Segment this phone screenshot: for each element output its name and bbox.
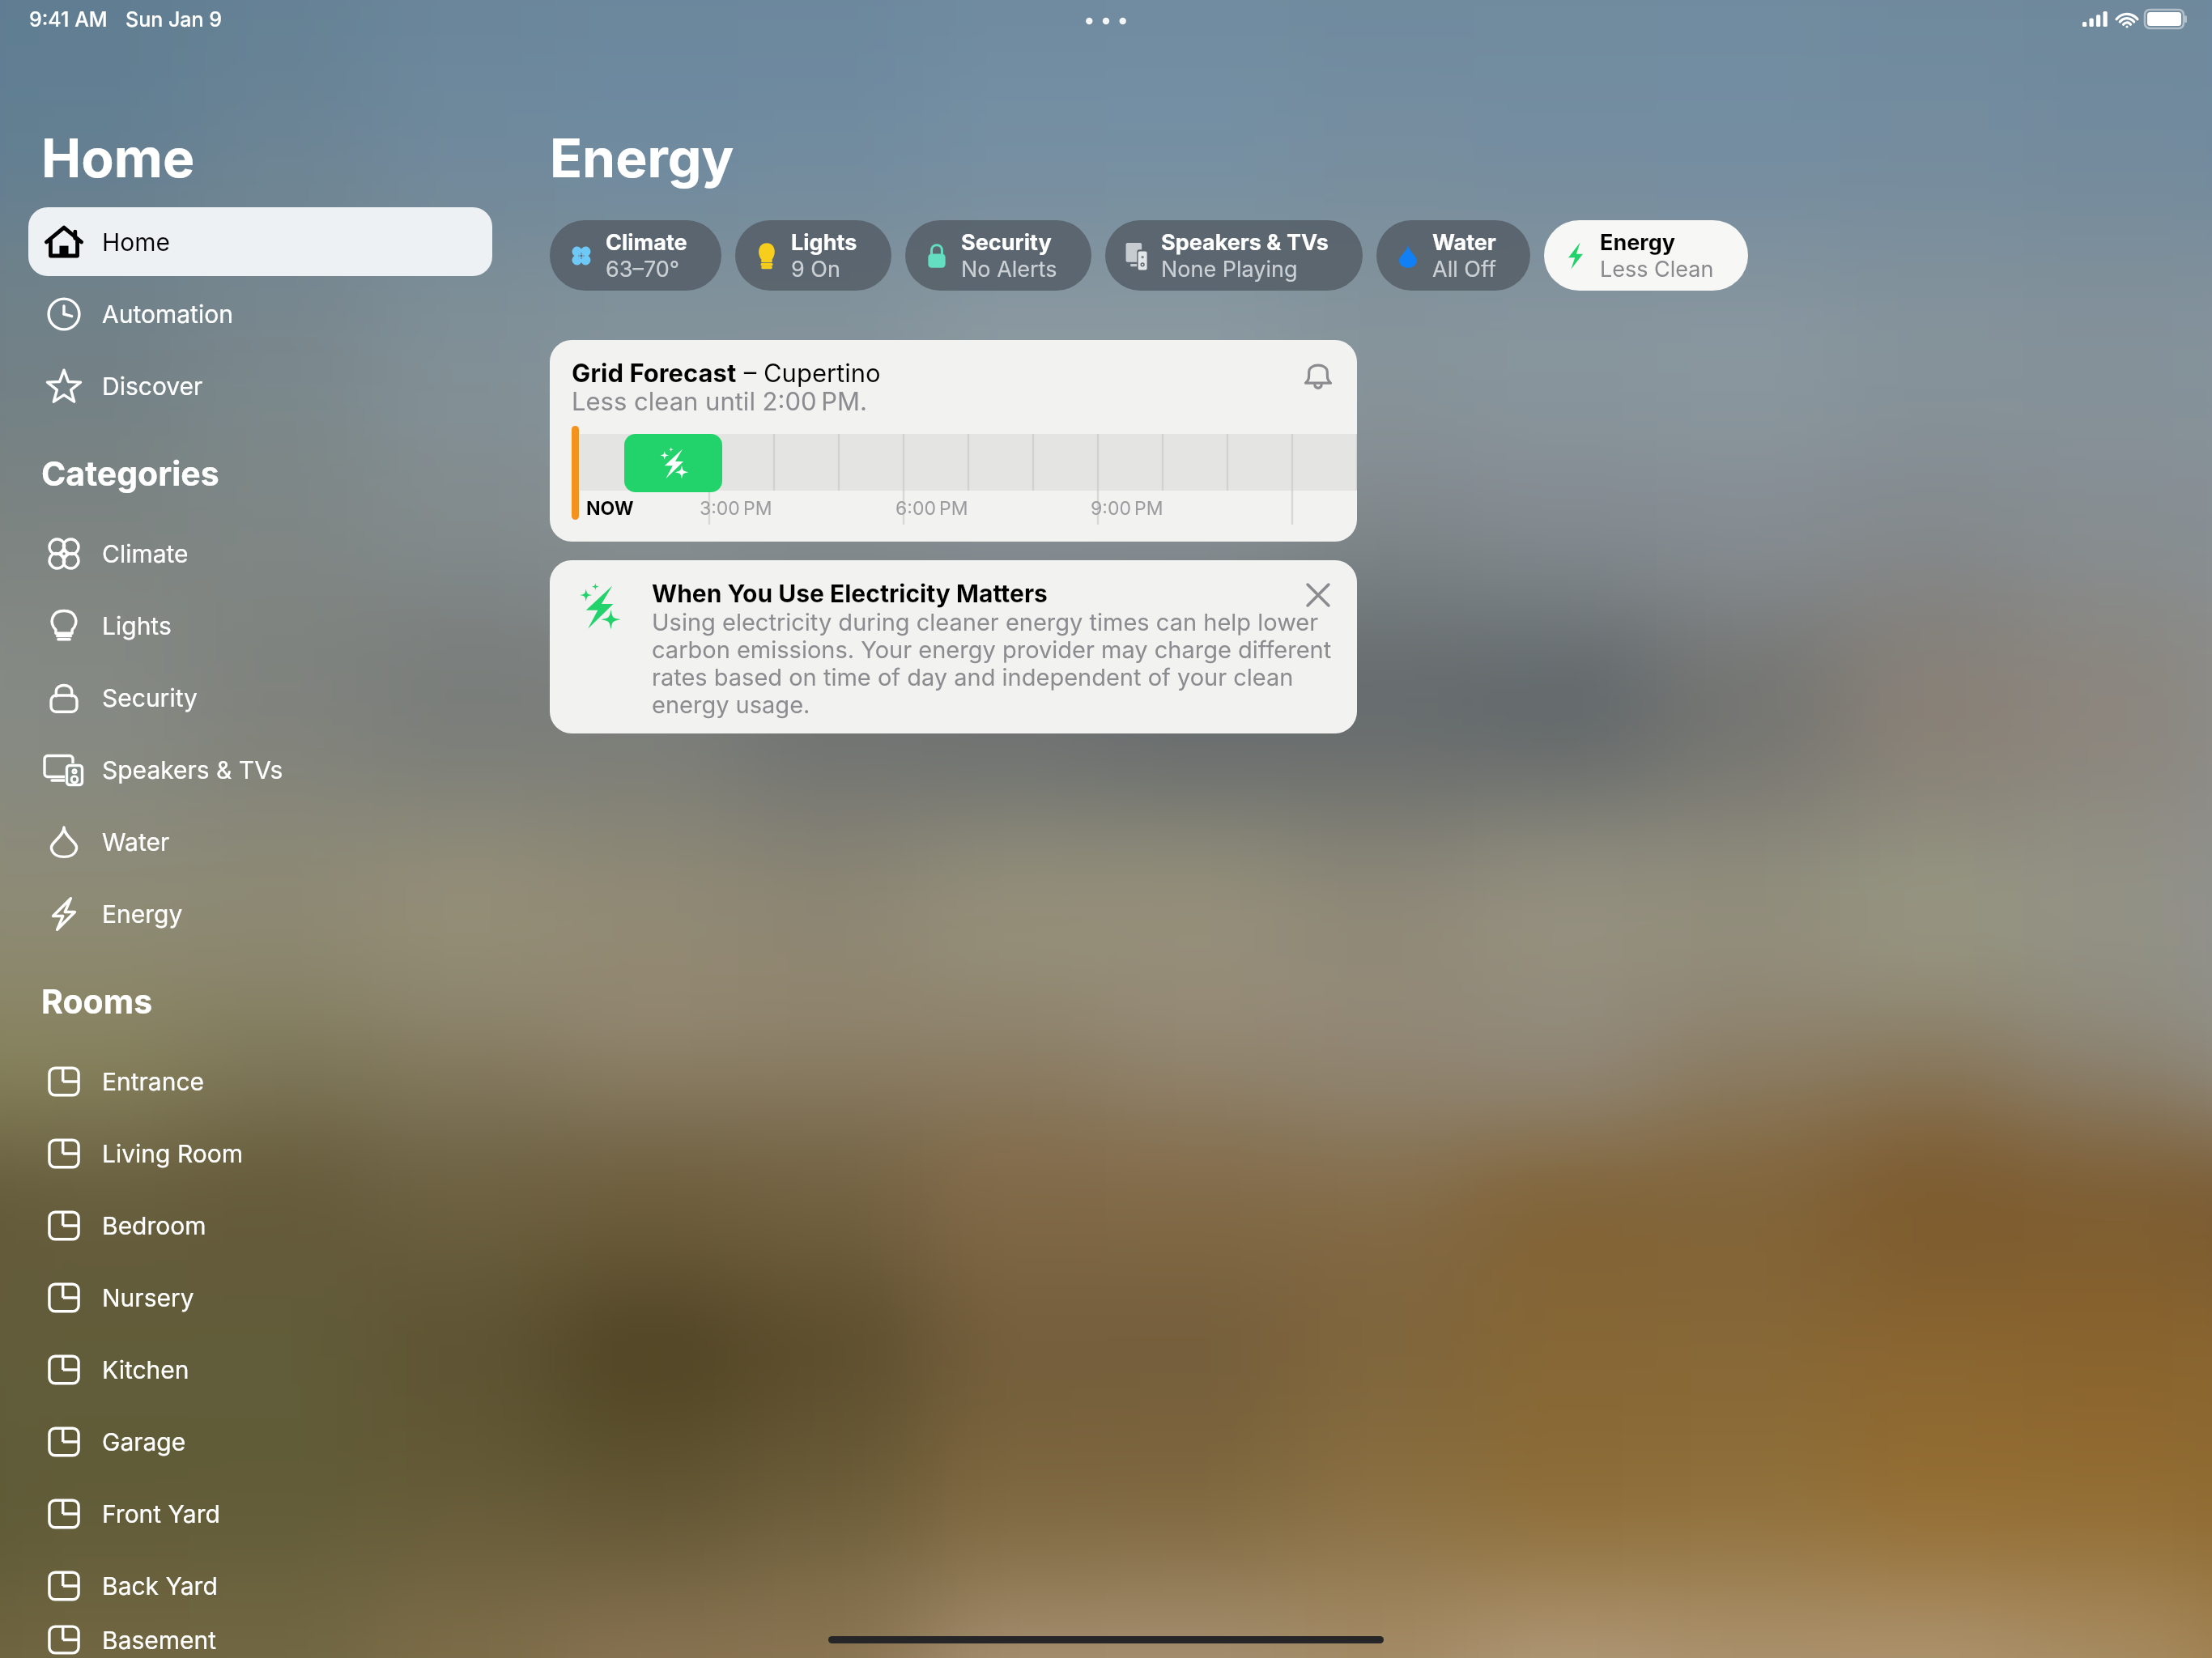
staticText: Security [961, 229, 1052, 256]
button[interactable]: Basement [28, 1623, 492, 1656]
staticText: Less Clean [1600, 256, 1714, 283]
staticText: Speakers & TVs [1161, 229, 1329, 256]
staticText: Bedroom [102, 1211, 206, 1240]
button[interactable]: Speakers & TVs [28, 735, 492, 804]
staticText: – Cupertino [737, 358, 881, 389]
staticText: All Off [1432, 256, 1496, 283]
button[interactable]: Bedroom [28, 1191, 492, 1260]
button[interactable]: When You Use Electricity Matters [550, 560, 1357, 733]
staticText: Living Room [102, 1139, 244, 1168]
staticText: Categories [41, 453, 219, 494]
staticText: Discover [102, 372, 203, 401]
staticText: None Playing [1161, 256, 1298, 283]
button[interactable]: Energy [28, 879, 492, 948]
button[interactable]: Living Room [28, 1119, 492, 1188]
button[interactable]: Kitchen [28, 1335, 492, 1404]
button[interactable]: Security [28, 663, 492, 732]
staticText: 6:00 PM [895, 497, 968, 520]
staticText: 9 On [791, 256, 840, 283]
staticText: Lights [102, 611, 172, 640]
button[interactable]: Garage [28, 1407, 492, 1476]
staticText: 9:41 AM [29, 7, 108, 32]
staticText: No Alerts [961, 256, 1057, 283]
button[interactable]: Front Yard [28, 1479, 492, 1548]
staticText: Home [102, 227, 171, 257]
staticText: Water [102, 827, 170, 857]
staticText: NOW [586, 497, 634, 520]
staticText: Basement [102, 1626, 217, 1655]
button[interactable]: Automation [28, 279, 492, 348]
staticText: 3:00 PM [700, 497, 772, 520]
staticText: Sun Jan 9 [125, 7, 222, 32]
staticText: Energy [1600, 229, 1675, 256]
staticText: Energy [550, 125, 734, 190]
button[interactable]: Home [28, 207, 492, 276]
button[interactable]: Back Yard [28, 1551, 492, 1620]
button[interactable]: Nursery [28, 1263, 492, 1332]
staticText: Climate [606, 229, 687, 256]
staticText: Lights [791, 229, 857, 256]
staticText: Security [102, 683, 198, 712]
staticText: Climate [102, 539, 189, 568]
staticText: Automation [102, 300, 233, 329]
staticText: Garage [102, 1427, 186, 1456]
button[interactable]: Entrance [28, 1047, 492, 1116]
button[interactable]: Lights [735, 220, 891, 291]
button[interactable]: Energy [1544, 220, 1748, 291]
button[interactable]: Lights [28, 591, 492, 660]
staticText: Grid Forecast [572, 358, 737, 389]
staticText: Front Yard [102, 1499, 220, 1528]
staticText: Rooms [41, 981, 153, 1022]
staticText: Water [1432, 229, 1496, 256]
staticText: Home [41, 125, 195, 190]
staticText: Entrance [102, 1067, 205, 1096]
staticText: Less clean until 2:00 PM. [572, 386, 867, 417]
button[interactable]: Climate [550, 220, 721, 291]
button[interactable]: Discover [28, 351, 492, 420]
staticText: 63–70° [606, 256, 680, 283]
staticText: When You Use Electricity Matters [652, 579, 1048, 608]
button[interactable]: Water [28, 807, 492, 876]
staticText: Energy [102, 899, 183, 929]
button[interactable]: Grid Forecast [550, 340, 1357, 542]
button[interactable]: Notifications [1295, 351, 1342, 398]
staticText: Back Yard [102, 1571, 218, 1601]
button[interactable]: Security [905, 220, 1091, 291]
button[interactable]: Dismiss [1295, 572, 1342, 619]
staticText: Using electricity during cleaner energy … [652, 608, 1340, 719]
staticText: 9:00 PM [1091, 497, 1163, 520]
button[interactable]: Climate [28, 519, 492, 588]
button[interactable]: Speakers & TVs [1105, 220, 1363, 291]
button[interactable]: Water [1376, 220, 1530, 291]
staticText: Nursery [102, 1283, 194, 1312]
staticText: Kitchen [102, 1355, 189, 1384]
staticText: Speakers & TVs [102, 755, 283, 784]
